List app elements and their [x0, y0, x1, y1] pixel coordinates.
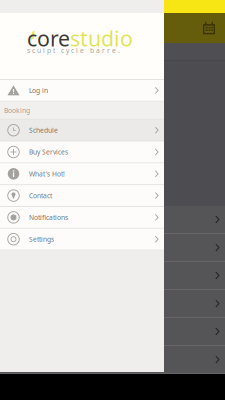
staticText: Notifications: [29, 213, 68, 222]
staticText: Booking: [4, 106, 30, 115]
staticText: s c u l p t c y c l e b a r r e .: [27, 46, 120, 55]
staticText: studio: [70, 24, 133, 52]
button[interactable]: Calendar: [197, 13, 221, 43]
button[interactable]: Buy Services: [0, 142, 164, 163]
staticText: Log in: [29, 86, 48, 95]
button[interactable]: Schedule: [0, 120, 164, 142]
staticText: core: [27, 24, 70, 52]
staticText: Schedule: [29, 126, 58, 135]
button[interactable]: Settings: [0, 229, 164, 251]
staticText: Settings: [29, 235, 54, 244]
staticText: What's Hot!: [29, 169, 65, 178]
staticText: Contact: [29, 191, 52, 200]
button[interactable]: Contact: [0, 185, 164, 207]
button[interactable]: What's Hot!: [0, 163, 164, 185]
button[interactable]: Notifications: [0, 207, 164, 229]
button[interactable]: Log in: [0, 80, 164, 102]
staticText: Buy Services: [29, 148, 68, 156]
